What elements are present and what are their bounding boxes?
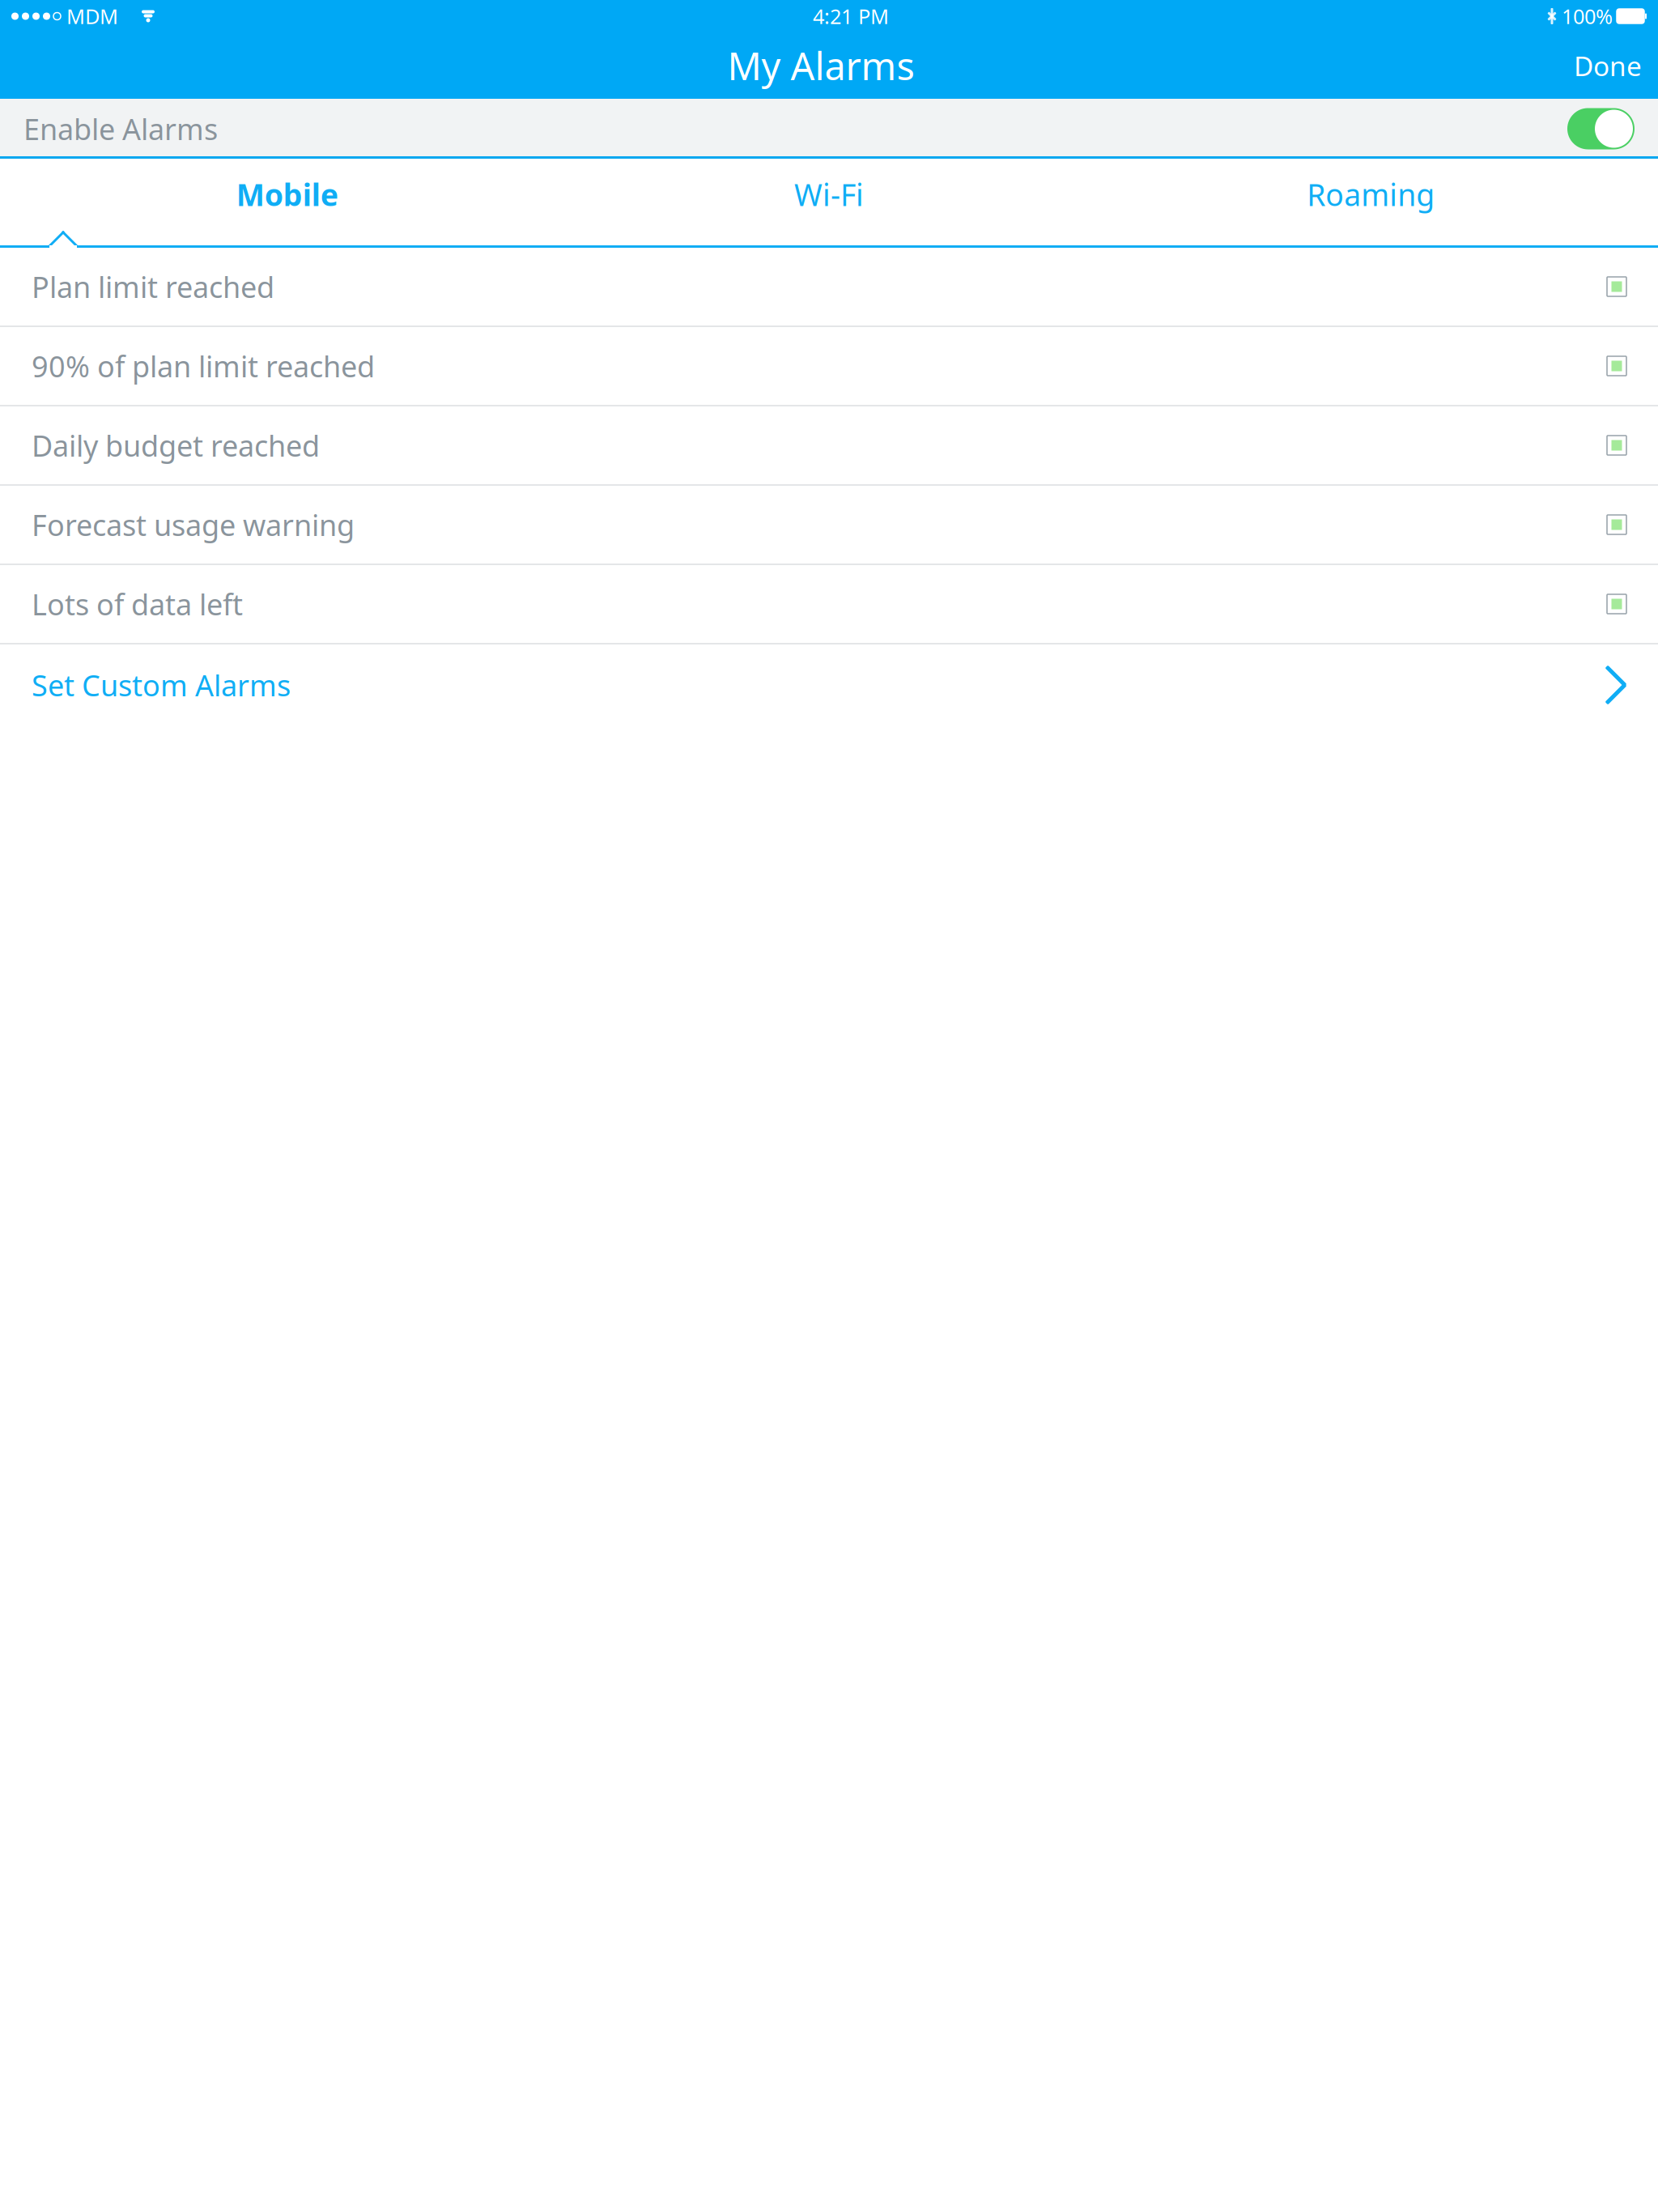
staticText: Roaming <box>1307 174 1435 214</box>
staticText: Forecast usage warning <box>32 505 355 544</box>
staticText: My Alarms <box>727 40 914 91</box>
staticText: Wi-Fi <box>794 174 864 214</box>
staticText: Enable Alarms <box>23 109 218 148</box>
staticText: Done <box>1574 48 1642 84</box>
button[interactable]: Daily budget reached <box>0 406 1658 486</box>
staticText: 100% <box>1562 3 1613 30</box>
button[interactable]: Forecast usage warning <box>0 486 1658 565</box>
button[interactable]: Roaming <box>1100 159 1642 230</box>
staticText: Mobile <box>236 174 338 214</box>
button[interactable]: Enable Alarms <box>0 99 1658 159</box>
staticText: Daily budget reached <box>32 426 320 465</box>
staticText: Lots of data left <box>32 585 243 623</box>
staticText: MDM <box>66 3 118 30</box>
staticText: Set Custom Alarms <box>32 666 291 704</box>
button[interactable]: Mobile <box>16 159 558 230</box>
button[interactable]: Wi-Fi <box>558 159 1100 230</box>
staticText: 90% of plan limit reached <box>32 347 375 385</box>
button[interactable]: Done <box>1558 38 1658 93</box>
staticText: 4:21 PM <box>813 3 889 30</box>
button[interactable]: Set Custom Alarms <box>0 644 1658 725</box>
button[interactable]: Plan limit reached <box>0 248 1658 327</box>
button[interactable]: Lots of data left <box>0 565 1658 644</box>
staticText: Plan limit reached <box>32 267 274 306</box>
button[interactable]: 90% of plan limit reached <box>0 327 1658 406</box>
